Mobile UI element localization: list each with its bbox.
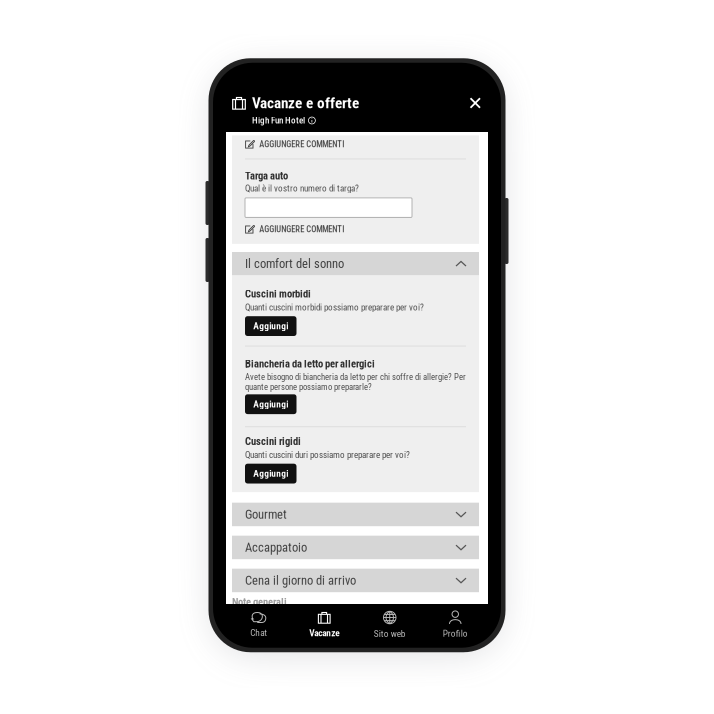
staticText: Vacanze e offerte [252, 94, 359, 112]
staticText: Sito web [374, 628, 406, 639]
staticText: Targa auto [245, 170, 288, 182]
staticText: Chat [250, 627, 267, 638]
staticText: Vacanze [309, 628, 339, 639]
button[interactable]: AGGIUNGERE COMMENTI [245, 139, 466, 149]
staticText: Cena il giorno di arrivo [245, 573, 356, 588]
staticText: AGGIUNGERE COMMENTI [259, 224, 344, 234]
staticText: High Fun Hotel [252, 115, 305, 126]
button[interactable]: Il comfort del sonno [232, 252, 479, 275]
staticText: Profilo [443, 628, 468, 639]
button[interactable]: Gourmet [232, 503, 479, 526]
staticText: Avete bisogno di biancheria da letto per… [245, 372, 466, 392]
staticText: Gourmet [245, 507, 287, 522]
staticText: Biancheria da letto per allergici [245, 358, 375, 370]
button[interactable]: Cena il giorno di arrivo [232, 569, 479, 592]
button[interactable]: Aggiungi [245, 394, 296, 414]
staticText: Il comfort del sonno [245, 256, 344, 271]
button[interactable]: Chat [226, 604, 291, 646]
staticText: Quanti cuscini duri possiamo preparare p… [245, 449, 410, 460]
staticText: Accappatoio [245, 540, 307, 555]
staticText: Quanti cuscini morbidi possiamo preparar… [245, 302, 424, 313]
button[interactable]: Aggiungi [245, 464, 296, 483]
button[interactable]: Vacanze [291, 604, 357, 646]
staticText: Aggiungi [253, 321, 288, 331]
staticText: Cuscini rigidi [245, 435, 301, 448]
staticText: AGGIUNGERE COMMENTI [259, 139, 344, 149]
staticText: Note generali [232, 596, 287, 608]
button[interactable]: Chiudi [464, 92, 486, 114]
button[interactable]: Sito web [357, 604, 422, 646]
button[interactable]: Profilo [422, 604, 488, 646]
staticText: Qual è il vostro numero di targa? [245, 183, 359, 194]
staticText: Aggiungi [253, 468, 288, 479]
staticText: Cuscini morbidi [245, 288, 311, 300]
staticText: Aggiungi [253, 399, 288, 410]
button[interactable]: AGGIUNGERE COMMENTI [245, 224, 466, 234]
button[interactable]: Accappatoio [232, 536, 479, 559]
button[interactable]: Aggiungi [245, 316, 296, 336]
